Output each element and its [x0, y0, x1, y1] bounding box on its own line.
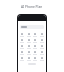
button[interactable]: App	[27, 50, 31, 56]
button[interactable]: App	[33, 38, 37, 44]
button[interactable]: App	[27, 32, 31, 38]
button[interactable]: App	[33, 32, 37, 38]
button[interactable]: App	[40, 32, 44, 38]
button[interactable]: App	[20, 32, 24, 38]
button[interactable]: App	[40, 50, 44, 56]
button[interactable]: App	[40, 38, 44, 44]
button[interactable]: App	[27, 44, 31, 50]
button[interactable]: Home	[28, 63, 36, 65]
button[interactable]: Search	[20, 25, 44, 29]
button[interactable]: App	[20, 56, 24, 62]
button[interactable]: App	[40, 56, 44, 62]
button[interactable]: App	[27, 38, 31, 44]
staticText: AI Phone Plan	[21, 5, 43, 9]
button[interactable]: App	[33, 50, 37, 56]
button[interactable]: App	[27, 56, 31, 62]
button[interactable]: App	[33, 44, 37, 50]
button[interactable]: App	[20, 44, 24, 50]
button[interactable]: App	[33, 56, 37, 62]
button[interactable]: App	[40, 44, 44, 50]
button[interactable]: App	[20, 38, 24, 44]
button[interactable]: App	[20, 50, 24, 56]
